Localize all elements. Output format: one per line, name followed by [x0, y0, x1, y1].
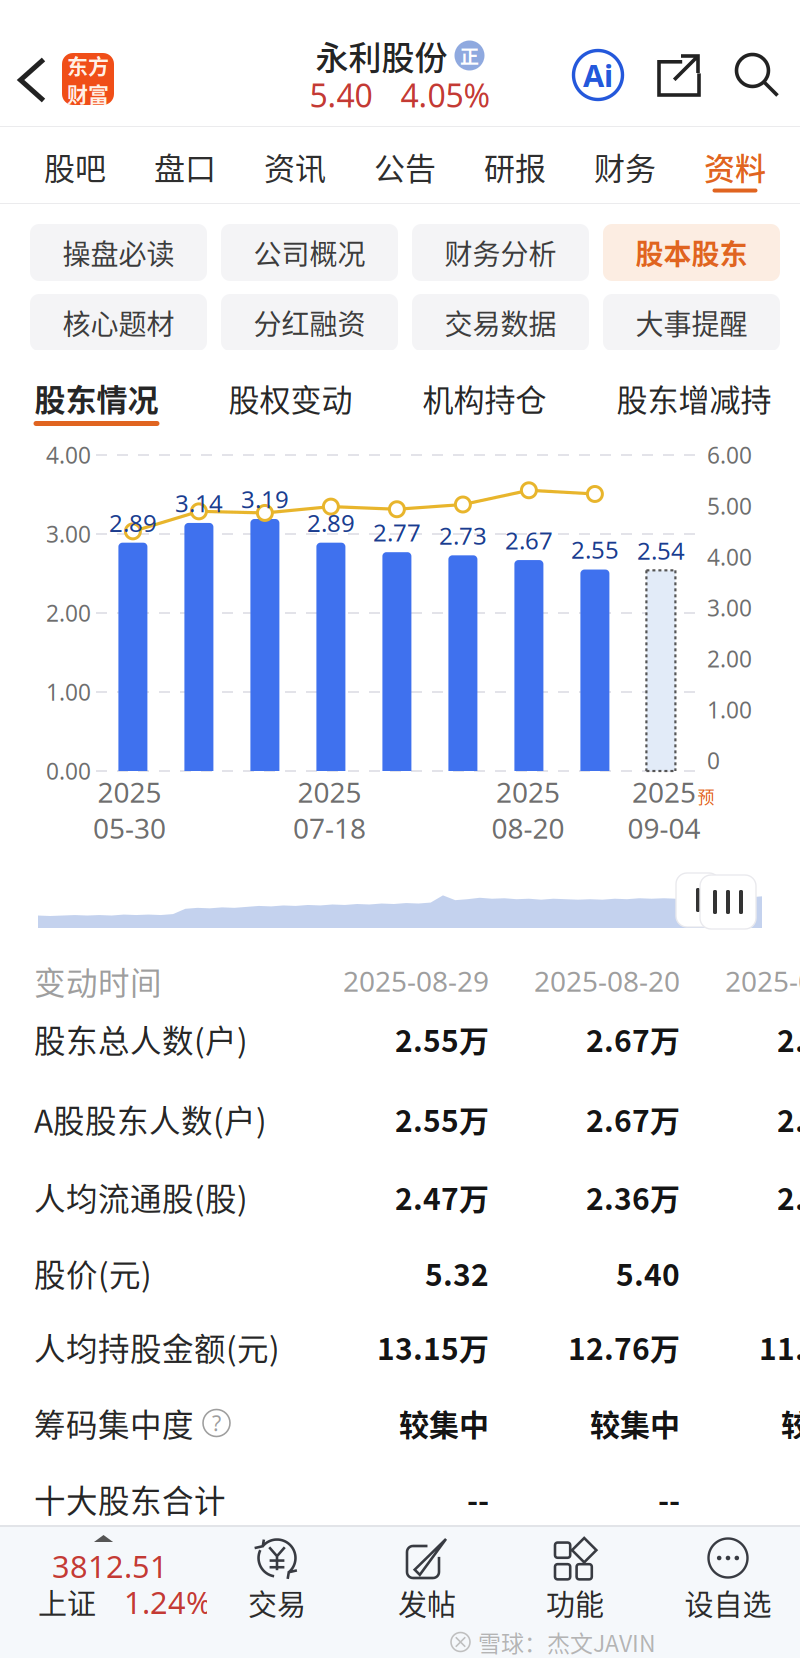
button[interactable]: 分红融资 — [221, 294, 398, 351]
staticText: 2.72万 — [777, 1017, 800, 1061]
button[interactable]: 股东增减持 — [615, 369, 773, 432]
button[interactable]: 股东情况 — [33, 369, 160, 432]
staticText: 1.00 — [707, 694, 752, 725]
staticText: 股东情况 — [34, 376, 158, 420]
staticText: 操盘必读 — [62, 232, 174, 273]
staticText: 股吧 — [44, 144, 106, 189]
button[interactable]: 股权变动 — [227, 369, 354, 432]
button[interactable]: 分享 — [642, 38, 716, 112]
staticText: 2025 — [632, 773, 696, 811]
button[interactable]: 搜索 — [720, 38, 794, 112]
button[interactable]: 区间视图 — [700, 875, 756, 929]
staticText: 大事提醒 — [635, 302, 747, 343]
staticText: 2025 — [298, 773, 362, 811]
staticText: -- — [467, 1477, 489, 1521]
staticText: ? — [212, 1409, 221, 1437]
staticText: 设自选 — [684, 1582, 771, 1624]
staticText: 较集中 — [590, 1401, 680, 1445]
staticText: 股东总人数(户) — [34, 1016, 248, 1062]
button[interactable]: 盘口 — [150, 137, 220, 200]
staticText: 2025-08-12 — [725, 962, 800, 1000]
staticText: 5.32 — [425, 1251, 489, 1295]
button[interactable]: 人均流通股(股) — [0, 1159, 800, 1235]
staticText: 2.00 — [46, 598, 91, 628]
button[interactable]: 股本股东 — [603, 224, 780, 281]
button[interactable]: 返回 — [0, 40, 64, 120]
button[interactable]: 发帖 — [357, 1527, 497, 1627]
button[interactable]: 功能 — [505, 1527, 645, 1627]
staticText: 05-30 — [93, 809, 166, 847]
button[interactable]: 公告 — [370, 137, 440, 200]
staticText: 预 — [697, 784, 714, 808]
staticText: 资讯 — [264, 144, 326, 189]
button[interactable]: 设自选 — [658, 1527, 798, 1627]
button[interactable]: 股吧 — [40, 137, 110, 200]
staticText: 资料 — [704, 144, 766, 189]
button[interactable]: 操盘必读 — [30, 224, 207, 281]
staticText: 正 — [460, 42, 479, 69]
button[interactable]: 公司概况 — [221, 224, 398, 281]
staticText: 2.77 — [373, 516, 421, 548]
staticText: 财务 — [594, 144, 656, 189]
staticText: 6.00 — [707, 440, 752, 470]
button[interactable]: 筹码集中度 — [0, 1385, 800, 1461]
button[interactable]: 资讯 — [260, 137, 330, 200]
staticText: 较集中 — [399, 1401, 489, 1445]
staticText: 07-18 — [293, 809, 366, 847]
staticText: 2.55万 — [395, 1097, 489, 1141]
staticText: 3812.51 — [52, 1546, 168, 1586]
staticText: 2.89 — [307, 507, 355, 539]
button[interactable]: 交易数据 — [412, 294, 589, 351]
staticText: 变动时间 — [34, 958, 162, 1004]
staticText: 上证 — [38, 1581, 96, 1623]
staticText: 4.05% — [400, 74, 490, 116]
staticText: 2.55万 — [395, 1017, 489, 1061]
staticText: A股股东人数(户) — [34, 1096, 267, 1142]
button[interactable]: AI 助手 — [559, 36, 637, 114]
staticText: -- — [658, 1477, 680, 1521]
button[interactable]: 十大股东合计 — [0, 1461, 800, 1537]
button[interactable]: 资料 — [700, 137, 770, 200]
staticText: 2025-08-20 — [534, 962, 680, 1000]
staticText: 公告 — [374, 144, 436, 189]
staticText: 财富 — [67, 78, 109, 108]
button[interactable]: 机构持仓 — [421, 369, 548, 432]
staticText: 2.55 — [571, 534, 619, 565]
button[interactable]: 单日视图 — [676, 873, 720, 927]
button[interactable]: 财务分析 — [412, 224, 589, 281]
staticText: 人均流通股(股) — [34, 1174, 248, 1220]
button[interactable]: 大事提醒 — [603, 294, 780, 351]
button[interactable]: 交易 — [207, 1527, 347, 1627]
staticText: 人均持股金额(元) — [34, 1324, 280, 1370]
staticText: 股本股东 — [635, 232, 747, 273]
staticText: 股价(元) — [34, 1250, 152, 1296]
staticText: 功能 — [546, 1582, 604, 1624]
staticText: 13.15万 — [377, 1325, 489, 1369]
staticText: 3.00 — [46, 519, 91, 549]
button[interactable]: 变动时间 — [0, 943, 800, 1019]
staticText: 交易数据 — [444, 302, 556, 343]
staticText: 2.00 — [707, 644, 752, 674]
staticText: 4.00 — [46, 440, 91, 470]
staticText: 2025-08-29 — [343, 962, 489, 1000]
staticText: 3.00 — [707, 593, 752, 623]
staticText: 研报 — [484, 144, 546, 189]
staticText: 2.67万 — [586, 1017, 680, 1061]
staticText: 3.19 — [241, 483, 289, 515]
button[interactable]: 股价(元) — [0, 1235, 800, 1311]
staticText: 0 — [707, 745, 720, 775]
staticText: 08-20 — [491, 809, 564, 847]
button[interactable]: 东方财富 — [62, 53, 114, 105]
button[interactable]: A股股东人数(户) — [0, 1081, 800, 1157]
staticText: 1.00 — [46, 677, 91, 707]
button[interactable]: 股东总人数(户) — [0, 1001, 800, 1077]
button[interactable]: 人均持股金额(元) — [0, 1309, 800, 1385]
button[interactable]: 上证指数 — [0, 1527, 220, 1625]
staticText: 较集中 — [781, 1401, 800, 1445]
button[interactable]: 研报 — [480, 137, 550, 200]
button[interactable]: 财务 — [590, 137, 660, 200]
staticText: 2.73 — [439, 519, 487, 551]
staticText: 2.89 — [109, 507, 157, 539]
staticText: 筹码集中度 — [34, 1400, 194, 1446]
button[interactable]: 核心题材 — [30, 294, 207, 351]
